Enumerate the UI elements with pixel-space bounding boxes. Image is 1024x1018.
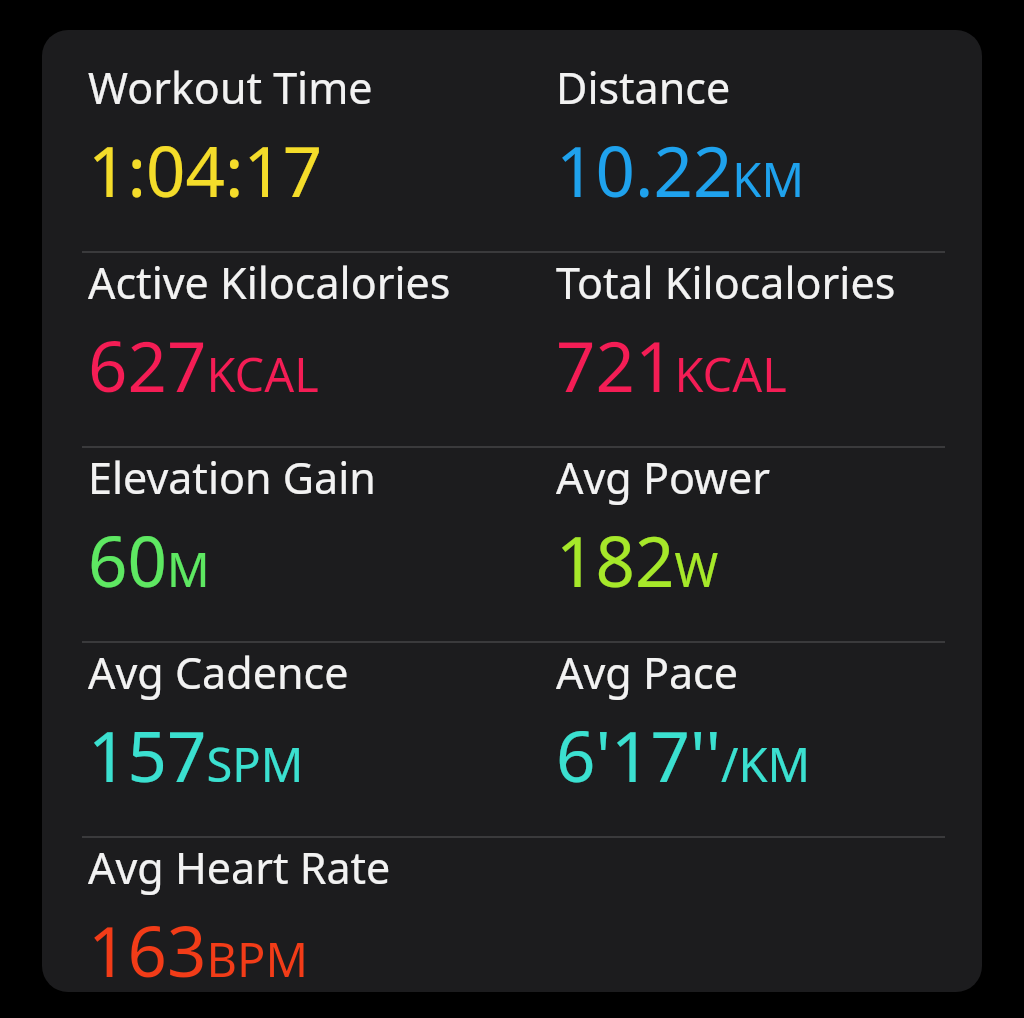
staticText: Distance [556,58,731,117]
staticText: 1:04:17 [88,123,323,217]
staticText: Elevation Gain [88,448,376,507]
staticText: Avg Cadence [88,643,349,702]
button[interactable]: Elevation Gain [88,448,508,607]
staticText: Total Kilocalories [556,253,896,312]
button[interactable]: Distance [556,58,976,217]
button[interactable]: Avg Pace [556,643,976,802]
button[interactable]: Avg Cadence [88,643,508,802]
staticText: 182W [556,513,719,607]
staticText: Active Kilocalories [88,253,451,312]
staticText: 163BPM [88,903,309,992]
staticText: 60M [88,513,210,607]
staticText: Avg Heart Rate [88,838,391,897]
button[interactable]: Avg Heart Rate [88,838,508,992]
staticText: 6'17''/KM [556,708,811,802]
button[interactable]: Workout Time [88,58,508,217]
button[interactable]: Total Kilocalories [556,253,976,412]
staticText: 627KCAL [88,318,319,412]
staticText: Avg Pace [556,643,738,702]
staticText: Avg Power [556,448,770,507]
staticText: 721KCAL [556,318,787,412]
button[interactable]: Active Kilocalories [88,253,508,412]
button[interactable]: Avg Power [556,448,976,607]
staticText: 10.22KM [556,123,805,217]
staticText: 157SPM [88,708,304,802]
staticText: Workout Time [88,58,373,117]
